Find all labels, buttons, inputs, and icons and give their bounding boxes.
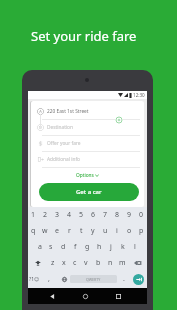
staticText: w <box>42 226 48 236</box>
staticText: 220 East 1st Street <box>47 108 89 115</box>
staticText: k <box>121 242 125 252</box>
button[interactable]: x <box>58 255 69 271</box>
button[interactable]: b <box>92 255 104 271</box>
staticText: v <box>84 258 88 268</box>
button[interactable]: i <box>111 223 123 239</box>
staticText: 9 <box>127 210 132 220</box>
button[interactable]: 3 <box>51 207 63 223</box>
staticText: 8 <box>115 210 120 220</box>
button[interactable]: r <box>63 223 75 239</box>
button[interactable]: s <box>45 239 57 255</box>
button[interactable]: Destination <box>37 120 141 135</box>
staticText: n <box>108 258 113 268</box>
button[interactable]: o <box>123 223 135 239</box>
button[interactable]: l <box>129 239 141 255</box>
button[interactable]: 6 <box>87 207 99 223</box>
button[interactable]: Additional info <box>37 152 141 167</box>
staticText: 2 <box>43 210 48 220</box>
staticText: 12:30 <box>133 92 145 98</box>
staticText: q <box>31 226 36 236</box>
button[interactable]: Period <box>117 271 130 287</box>
staticText: 1 <box>31 210 36 220</box>
button[interactable]: Enter <box>130 271 147 287</box>
staticText: Offer your fare <box>47 140 81 147</box>
button[interactable]: Options <box>31 168 144 183</box>
button[interactable]: Back <box>44 288 60 304</box>
staticText: j <box>110 242 112 252</box>
staticText: l <box>134 242 136 252</box>
staticText: 6 <box>91 210 96 220</box>
staticText: , <box>48 274 50 284</box>
staticText: . <box>123 274 125 284</box>
button[interactable]: 0 <box>135 207 147 223</box>
staticText: s <box>49 242 53 252</box>
button[interactable]: 7 <box>99 207 111 223</box>
staticText: r <box>68 226 71 236</box>
button[interactable]: w <box>39 223 51 239</box>
staticText: 7 <box>103 210 108 220</box>
button[interactable]: z <box>47 255 58 271</box>
button[interactable]: 1 <box>28 207 39 223</box>
staticText: 5 <box>79 210 84 220</box>
button[interactable]: 9 <box>123 207 135 223</box>
staticText: i <box>116 226 118 236</box>
button[interactable]: d <box>57 239 69 255</box>
staticText: Get a car <box>76 188 102 196</box>
staticText: 0 <box>139 210 144 220</box>
staticText: g <box>85 242 90 252</box>
button[interactable]: g <box>81 239 93 255</box>
button[interactable]: 220 East 1st Street <box>37 104 141 119</box>
staticText: z <box>51 258 55 268</box>
staticText: m <box>119 258 126 268</box>
staticText: t <box>80 226 83 236</box>
staticText: Set your ride fare <box>31 27 137 45</box>
staticText: ?1☺ <box>29 276 40 283</box>
button[interactable]: c <box>69 255 80 271</box>
button[interactable]: v <box>80 255 92 271</box>
button[interactable]: j <box>105 239 117 255</box>
staticText: e <box>55 226 59 236</box>
button[interactable]: Offer your fare <box>37 136 141 151</box>
button[interactable]: q <box>28 223 39 239</box>
staticText: a <box>38 242 42 252</box>
staticText: Destination <box>47 124 73 131</box>
button[interactable]: k <box>117 239 129 255</box>
staticText: QWERTY <box>86 277 101 282</box>
button[interactable]: Get a car <box>39 183 139 201</box>
button[interactable]: h <box>93 239 105 255</box>
button[interactable]: u <box>99 223 111 239</box>
staticText: x <box>62 258 66 268</box>
button[interactable]: n <box>104 255 116 271</box>
button[interactable]: Recent apps <box>110 288 126 304</box>
staticText: h <box>97 242 102 252</box>
button[interactable]: m <box>116 255 128 271</box>
button[interactable]: 2 <box>39 207 51 223</box>
staticText: 4 <box>67 210 72 220</box>
button[interactable]: p <box>135 223 147 239</box>
staticText: y <box>91 226 95 236</box>
button[interactable]: 4 <box>63 207 75 223</box>
staticText: c <box>73 258 77 268</box>
button[interactable]: y <box>87 223 99 239</box>
button[interactable]: 5 <box>75 207 87 223</box>
button[interactable]: Backspace <box>128 255 147 271</box>
button[interactable]: 8 <box>111 207 123 223</box>
button[interactable]: a <box>34 239 45 255</box>
button[interactable]: Shift <box>28 255 47 271</box>
button[interactable]: f <box>69 239 81 255</box>
button[interactable]: ?1☺ <box>28 271 40 287</box>
button[interactable]: QWERTY <box>70 275 117 283</box>
button[interactable]: Comma <box>40 271 58 287</box>
staticText: 3 <box>55 210 60 220</box>
button[interactable]: e <box>51 223 63 239</box>
button[interactable]: t <box>75 223 87 239</box>
staticText: f <box>74 242 77 252</box>
staticText: Options <box>76 172 94 179</box>
staticText: b <box>96 258 101 268</box>
button[interactable]: Add stop <box>115 116 123 124</box>
button[interactable]: Home <box>77 288 93 304</box>
staticText: d <box>61 242 66 252</box>
staticText: o <box>127 226 132 236</box>
staticText: Additional info <box>47 156 80 163</box>
button[interactable]: Change language <box>58 271 70 287</box>
